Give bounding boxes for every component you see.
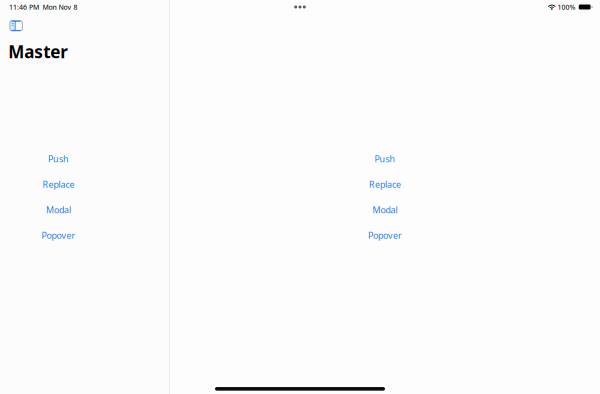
staticText: Mon Nov 8 (43, 2, 78, 12)
button[interactable]: Push (170, 146, 600, 171)
staticText: 11:46 PM (9, 2, 39, 12)
staticText: Popover (368, 229, 402, 241)
button[interactable]: Replace (0, 172, 117, 197)
staticText: Modal (372, 204, 397, 216)
staticText: 100% (557, 2, 575, 12)
button[interactable]: Popover (170, 222, 600, 248)
staticText: Push (48, 153, 69, 165)
staticText: Popover (41, 229, 75, 241)
button[interactable]: Replace (170, 171, 600, 197)
button[interactable]: Modal (0, 197, 117, 223)
staticText: Modal (46, 204, 71, 216)
button[interactable]: Push (0, 146, 117, 172)
staticText: Replace (369, 178, 401, 190)
staticText: Push (374, 153, 395, 165)
staticText: Replace (42, 178, 74, 190)
button[interactable]: Popover (0, 223, 117, 248)
button[interactable]: Toggle Sidebar (8, 19, 24, 33)
button[interactable]: Modal (170, 197, 600, 222)
staticText: Master (8, 40, 68, 63)
button[interactable]: Multitasking Controls (288, 1, 312, 12)
